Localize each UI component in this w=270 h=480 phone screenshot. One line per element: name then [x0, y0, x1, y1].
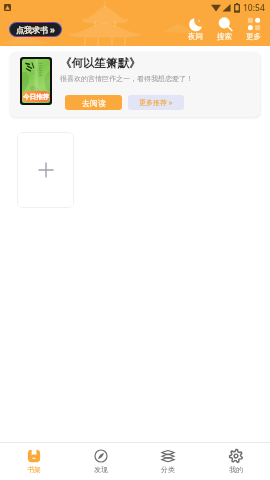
- staticText: 更多: [246, 32, 261, 41]
- button[interactable]: 书架: [0, 443, 67, 480]
- staticText: 点我求书 »: [16, 24, 55, 35]
- staticText: 搜索: [217, 32, 232, 41]
- staticText: 发现: [94, 465, 108, 474]
- button[interactable]: 更多推荐 »: [128, 95, 184, 110]
- staticText: 很喜欢的言情巨作之一，看得我想恋爱了！: [60, 74, 193, 83]
- button[interactable]: More: [241, 17, 266, 41]
- button[interactable]: Add book: [17, 132, 74, 208]
- staticText: 我的: [229, 465, 243, 474]
- staticText: 分类: [161, 465, 175, 474]
- staticText: 去阅读: [82, 98, 106, 108]
- button[interactable]: Night mode: [183, 17, 208, 41]
- button[interactable]: Search: [212, 17, 237, 41]
- staticText: 夜间: [188, 32, 203, 41]
- staticText: 更多推荐 »: [139, 98, 173, 108]
- button[interactable]: 点我求书 »: [9, 22, 62, 37]
- button[interactable]: 去阅读: [65, 95, 122, 110]
- button[interactable]: 我的: [202, 443, 270, 480]
- button[interactable]: 分类: [134, 443, 202, 480]
- staticText: 今日推荐: [23, 93, 49, 101]
- button[interactable]: 今日推荐: [10, 52, 260, 117]
- staticText: 10:54: [243, 2, 265, 14]
- staticText: 《何以笙箫默》: [60, 56, 141, 70]
- staticText: 书架: [27, 465, 41, 474]
- button[interactable]: 发现: [67, 443, 134, 480]
